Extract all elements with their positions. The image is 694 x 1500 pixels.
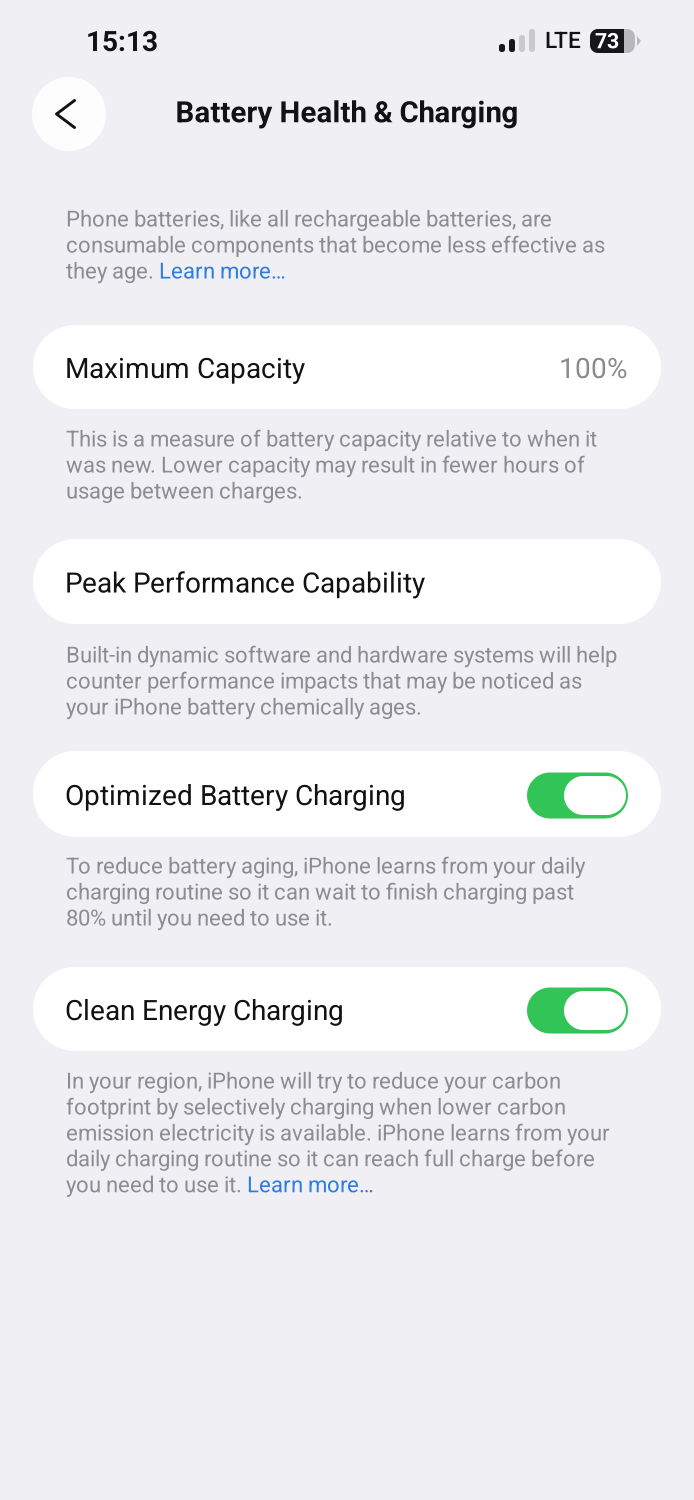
- staticText: Peak Performance Capability: [65, 567, 425, 599]
- button[interactable]: Clean Energy Charging: [33, 967, 661, 1051]
- button[interactable]: Clean Energy Charging: [527, 987, 628, 1033]
- staticText: Phone batteries, like all rechargeable b…: [66, 206, 605, 284]
- staticText: In your region, iPhone will try to reduc…: [66, 1068, 610, 1198]
- button[interactable]: Optimized Battery Charging: [33, 751, 661, 837]
- button[interactable]: Peak Performance Capability: [33, 539, 661, 624]
- button[interactable]: Back: [32, 77, 106, 151]
- staticText: Maximum Capacity: [65, 352, 305, 385]
- staticText: Clean Energy Charging: [65, 994, 344, 1027]
- button[interactable]: Optimized Battery Charging: [527, 772, 628, 818]
- staticText: This is a measure of battery capacity re…: [66, 426, 597, 504]
- staticText: 15:13: [86, 25, 158, 58]
- staticText: To reduce battery aging, iPhone learns f…: [66, 853, 585, 931]
- staticText: Built-in dynamic software and hardware s…: [66, 642, 617, 720]
- staticText: LTE: [545, 27, 581, 54]
- staticText: Optimized Battery Charging: [65, 779, 406, 812]
- staticText: Battery Health & Charging: [175, 95, 518, 129]
- button[interactable]: Maximum Capacity: [33, 325, 661, 409]
- staticText: 100%: [559, 352, 628, 385]
- staticText: 73: [595, 28, 619, 53]
